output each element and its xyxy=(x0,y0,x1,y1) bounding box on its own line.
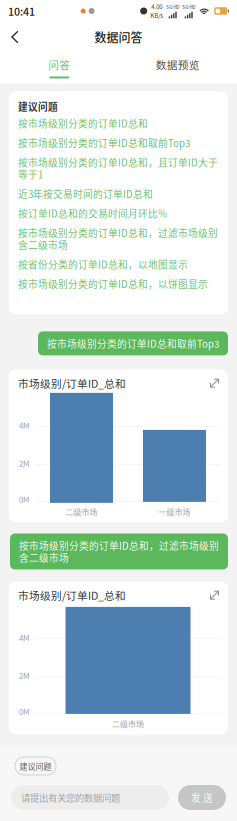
staticText: 2M xyxy=(19,670,29,681)
staticText: 按市场级别分类的订单ID总和，且订单ID大于等于1 xyxy=(18,155,218,181)
button[interactable]: Expand chart xyxy=(208,377,221,390)
button[interactable]: 按市场级别分类的订单ID总和，过滤市场级别含二级市场 xyxy=(0,533,237,569)
button[interactable]: Expand chart xyxy=(208,589,221,602)
button[interactable]: 按市场级别分类的订单ID总和，且订单ID大于等于1 xyxy=(9,152,228,184)
staticText: 10:41 xyxy=(8,3,35,19)
staticText: KB/s xyxy=(150,11,163,20)
staticText: 5G HD xyxy=(166,4,179,10)
staticText: 0M xyxy=(19,494,29,505)
button[interactable]: 按订单ID总和的交易时间月环比% xyxy=(9,203,228,223)
staticText: 问答 xyxy=(48,57,70,72)
staticText: 按市场级别分类的订单ID总和，过滤市场级别含二级市场 xyxy=(19,538,219,564)
staticText: 近3年按交易时间的订单ID总和 xyxy=(18,187,153,201)
staticText: 按市场级别分类的订单ID总和取前Top3 xyxy=(18,136,190,150)
staticText: 按市场级别分类的订单ID总和 xyxy=(18,116,148,130)
staticText: 请提出有关您的数据问题 xyxy=(21,791,120,804)
staticText: 5G HD xyxy=(182,4,195,10)
button[interactable]: 数据预览 xyxy=(118,52,237,83)
staticText: 数据预览 xyxy=(156,57,200,72)
staticText: 按市场级别分类的订单ID总和，过滤市场级别含二级市场 xyxy=(18,226,218,252)
staticText: 按省份分类的订单ID总和，以地图显示 xyxy=(18,257,188,271)
button[interactable]: 近3年按交易时间的订单ID总和 xyxy=(9,184,228,203)
button[interactable]: 发 送 xyxy=(178,785,226,810)
button[interactable]: Back xyxy=(0,22,30,52)
staticText: 按市场级别分类的订单ID总和，以饼图显示 xyxy=(18,277,208,291)
staticText: 0M xyxy=(19,706,29,717)
staticText: 一级市场 xyxy=(158,506,190,517)
button[interactable]: 按市场级别分类的订单ID总和，以饼图显示 xyxy=(9,274,228,293)
staticText: 按市场级别分类的订单ID总和取前Top3 xyxy=(47,336,219,350)
staticText: 4M xyxy=(19,632,29,643)
button[interactable]: 按省份分类的订单ID总和，以地图显示 xyxy=(9,254,228,274)
staticText: 数据问答 xyxy=(94,28,142,46)
button[interactable]: 按市场级别分类的订单ID总和取前Top3 xyxy=(9,133,228,152)
staticText: 二级市场 xyxy=(65,506,97,517)
staticText: 二级市场 xyxy=(112,718,144,729)
staticText: 建议问题 xyxy=(19,760,51,772)
staticText: 4.00 xyxy=(151,2,162,11)
staticText: 4M xyxy=(19,420,29,431)
button[interactable]: 按市场级别分类的订单ID总和，过滤市场级别含二级市场 xyxy=(9,223,228,254)
staticText: 2M xyxy=(19,458,29,469)
staticText: 建议问题 xyxy=(18,99,58,113)
staticText: 按订单ID总和的交易时间月环比% xyxy=(18,206,167,220)
button[interactable]: 问答 xyxy=(0,52,118,83)
button[interactable]: 按市场级别分类的订单ID总和取前Top3 xyxy=(0,331,237,355)
staticText: 发 送 xyxy=(191,790,213,804)
button[interactable]: 请提出有关您的数据问题 xyxy=(11,785,169,810)
button[interactable]: 按市场级别分类的订单ID总和 xyxy=(9,113,228,133)
staticText: 市场级别/订单ID_总和 xyxy=(18,375,126,391)
button[interactable]: 建议问题 xyxy=(15,757,56,775)
staticText: 市场级别/订单ID_总和 xyxy=(18,587,126,603)
